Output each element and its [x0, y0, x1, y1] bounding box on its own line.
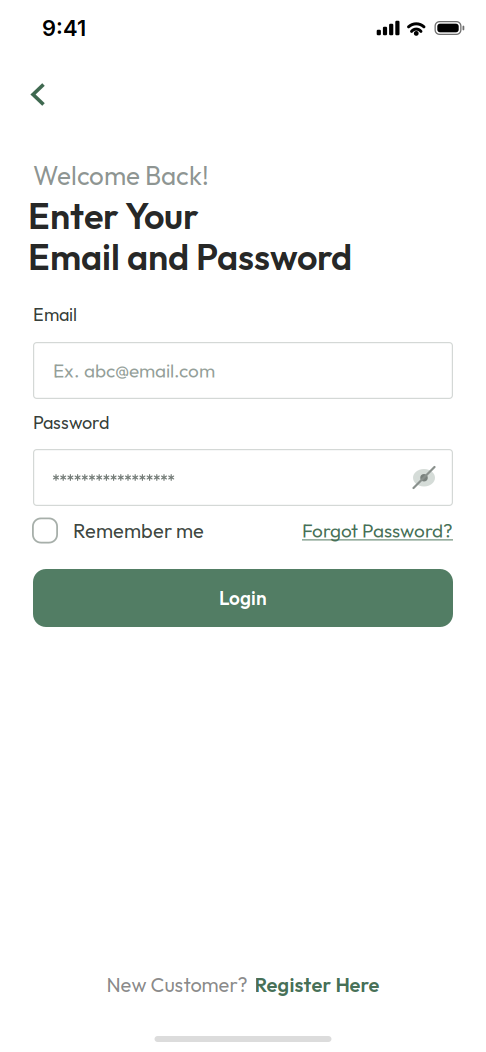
staticText: Welcome Back! — [33, 159, 209, 192]
button[interactable]: Remember me — [32, 517, 204, 543]
button[interactable]: Email — [33, 342, 453, 399]
staticText: 9:41 — [42, 15, 86, 41]
button[interactable]: Show password — [409, 462, 439, 492]
staticText: Email — [33, 303, 77, 326]
button[interactable]: Register Here — [254, 972, 379, 997]
staticText: New Customer? — [106, 972, 247, 997]
staticText: Register Here — [254, 972, 379, 997]
staticText: Password — [33, 411, 109, 434]
staticText: Ex. abc@email.com — [53, 358, 215, 382]
staticText: Remember me — [73, 518, 204, 543]
staticText: Login — [219, 586, 267, 610]
staticText: Email and Password — [28, 234, 352, 279]
button[interactable]: Login — [33, 569, 453, 627]
button[interactable]: Forgot Password? — [302, 518, 453, 542]
button[interactable]: Back — [23, 75, 54, 114]
staticText: Enter Your — [28, 193, 199, 238]
staticText: Forgot Password? — [302, 518, 453, 542]
button[interactable]: Password — [33, 449, 453, 506]
